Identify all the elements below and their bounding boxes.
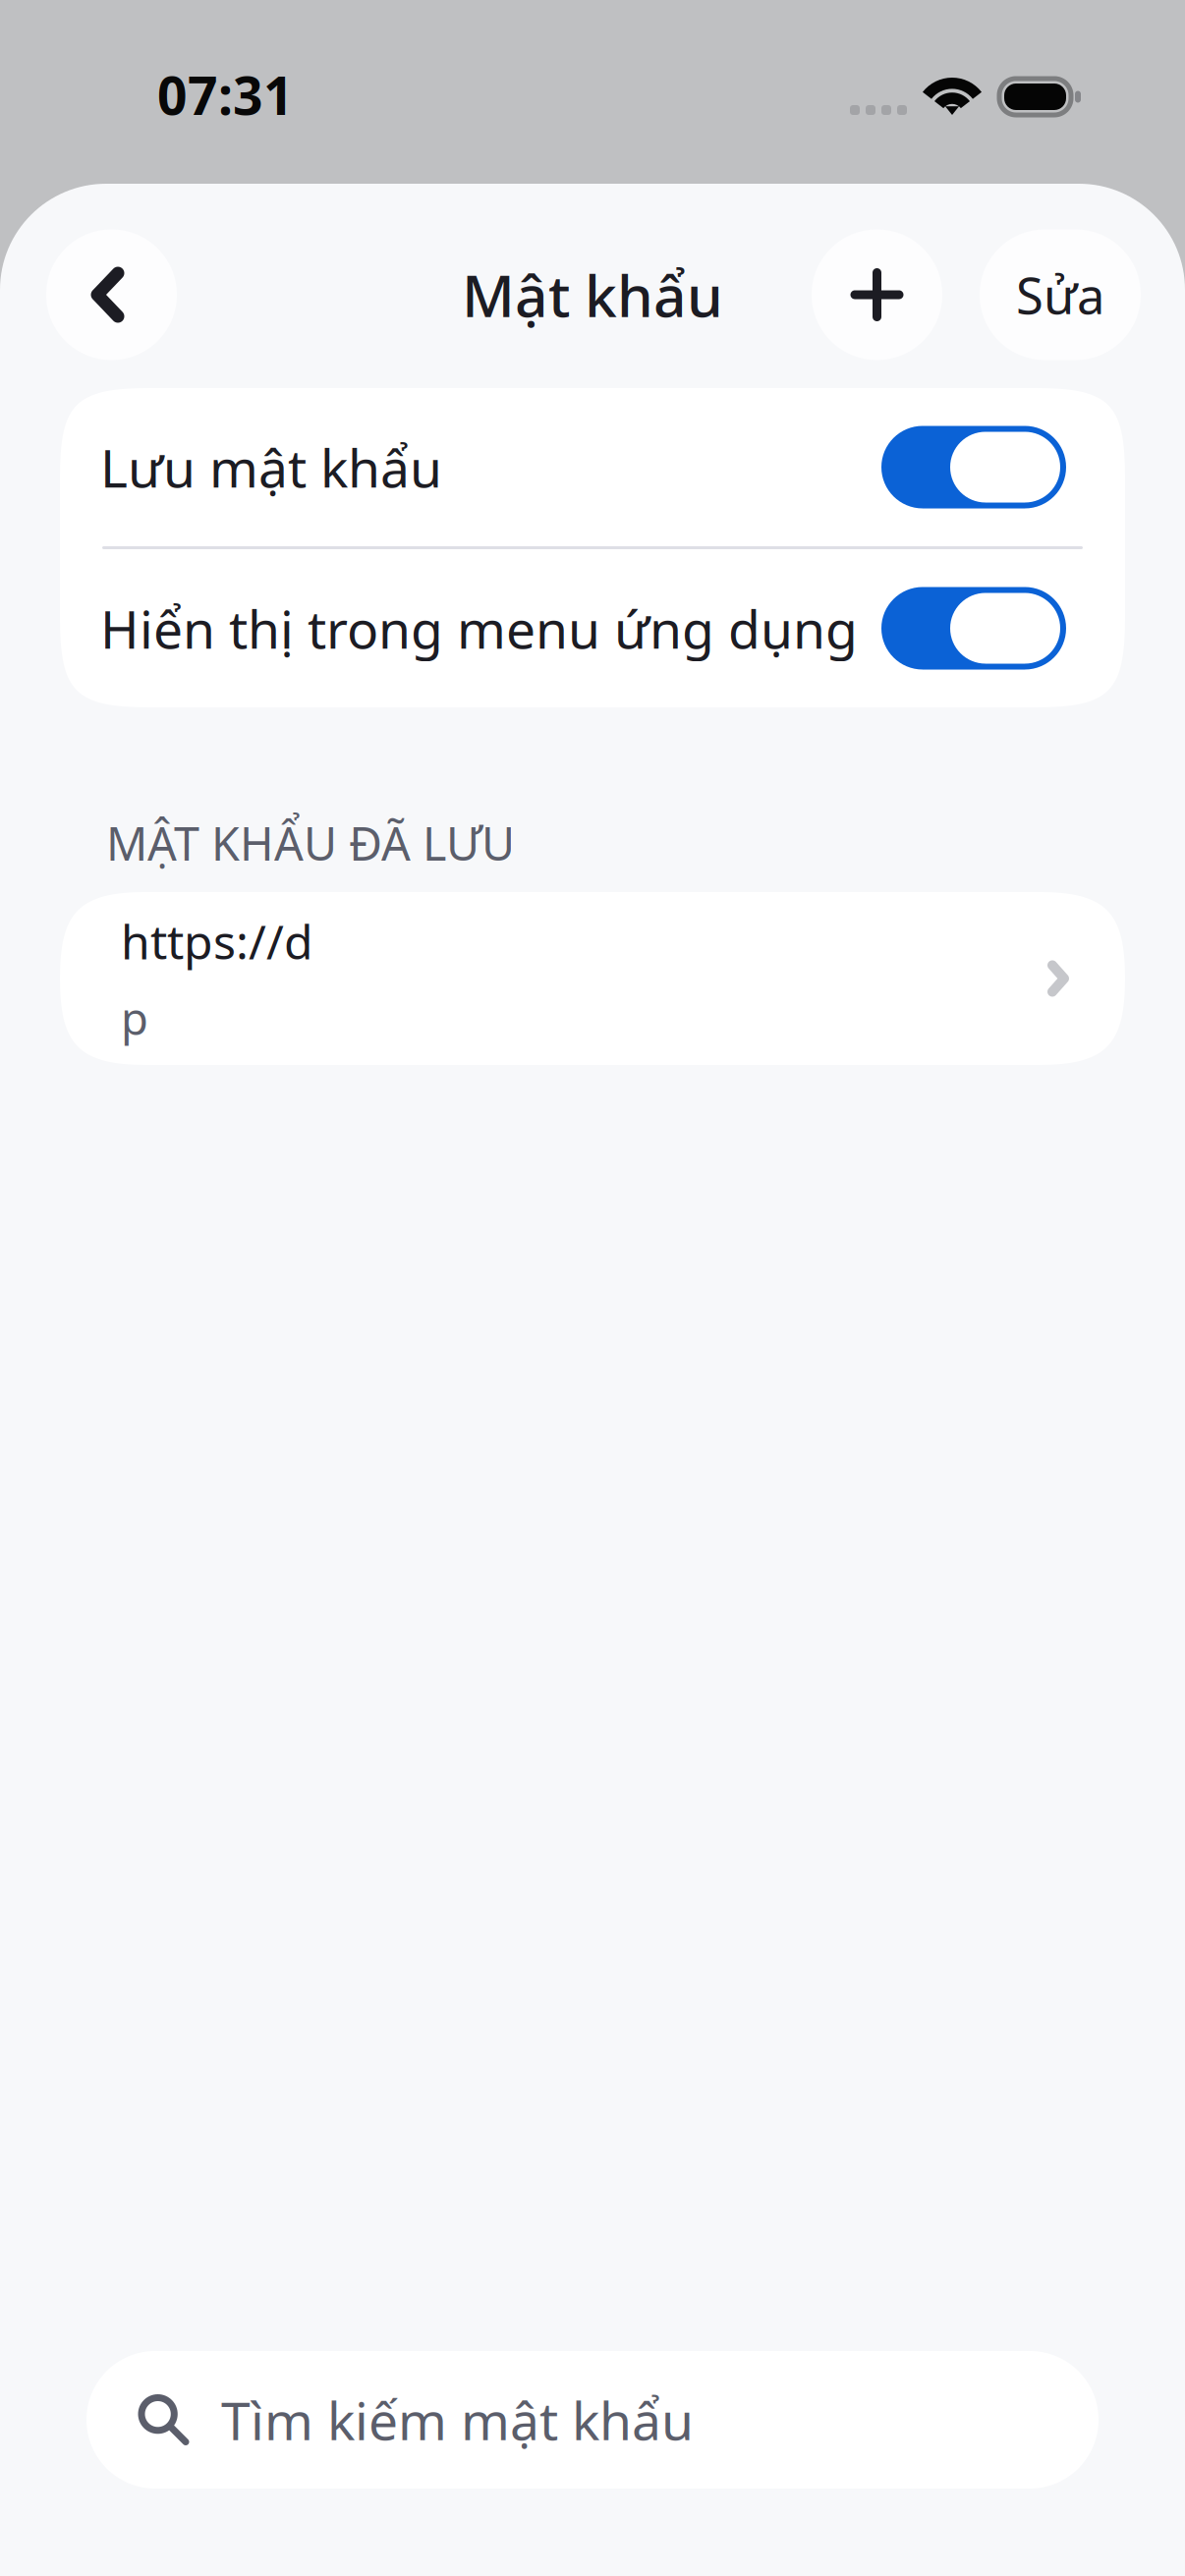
staticText: 07:31: [157, 60, 294, 129]
button[interactable]: https://d: [0, 892, 1185, 1065]
staticText: p: [121, 988, 148, 1047]
button[interactable]: Tìm kiếm mật khẩu: [0, 2351, 1185, 2489]
button[interactable]: Sửa: [980, 229, 1141, 360]
staticText: Tìm kiếm mật khẩu: [221, 2385, 694, 2455]
staticText: MẬT KHẨU ĐÃ LƯU: [106, 812, 515, 873]
button[interactable]: Lưu mật khẩu: [60, 388, 1125, 546]
staticText: Lưu mật khẩu: [100, 432, 442, 502]
staticText: Mật khẩu: [462, 256, 723, 333]
button[interactable]: Hiển thị trong menu ứng dụng: [60, 549, 1125, 707]
button[interactable]: Back: [46, 229, 177, 360]
button[interactable]: Add password: [812, 229, 942, 360]
staticText: Sửa: [1016, 262, 1104, 328]
staticText: https://d: [121, 910, 313, 972]
staticText: Hiển thị trong menu ứng dụng: [100, 594, 858, 663]
